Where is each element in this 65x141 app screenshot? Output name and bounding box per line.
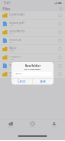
staticText: 1.2 MB [9, 25, 13, 26]
staticText: 8 items [9, 33, 13, 35]
staticText: 9:41 [4, 1, 11, 5]
staticText: New Folder [24, 64, 40, 68]
button[interactable]: Documents [0, 28, 65, 37]
button[interactable]: Cancel [11, 78, 32, 85]
button[interactable]: Shared [43, 119, 65, 130]
staticText: report.pdf [9, 21, 24, 25]
staticText: Pictures [9, 55, 20, 58]
button[interactable]: Recents [22, 119, 43, 130]
staticText: 5 items [9, 75, 13, 77]
staticText: 102 items [9, 58, 15, 60]
staticText: Enter a name for this folder [24, 69, 41, 70]
button[interactable]: todo.md [0, 62, 65, 70]
staticText: 4 KB [9, 41, 12, 43]
button[interactable]: Files [2, 6, 10, 11]
button[interactable]: Music [0, 45, 65, 53]
button[interactable]: New item [59, 7, 63, 10]
button[interactable]: Projects [0, 70, 65, 79]
button[interactable]: Save [33, 78, 53, 85]
staticText: Documents [9, 29, 24, 33]
staticText: 30 items [9, 50, 14, 52]
staticText: notes.txt [9, 38, 21, 41]
button[interactable]: Browse [0, 119, 22, 130]
staticText: todo.md [9, 63, 21, 67]
button[interactable]: Downloads [0, 11, 65, 20]
staticText: 12 items [9, 16, 14, 18]
staticText: Untitled folder [14, 73, 22, 75]
button[interactable]: report.pdf [0, 20, 65, 28]
staticText: 2 KB [9, 67, 12, 68]
button[interactable]: notes.txt [0, 37, 65, 45]
button[interactable]: Pictures [0, 53, 65, 62]
staticText: Save [40, 80, 46, 83]
staticText: Downloads [9, 13, 24, 16]
staticText: Music [9, 46, 16, 50]
staticText: Files [2, 6, 10, 11]
staticText: Cancel [17, 80, 26, 83]
staticText: Projects [9, 71, 20, 75]
